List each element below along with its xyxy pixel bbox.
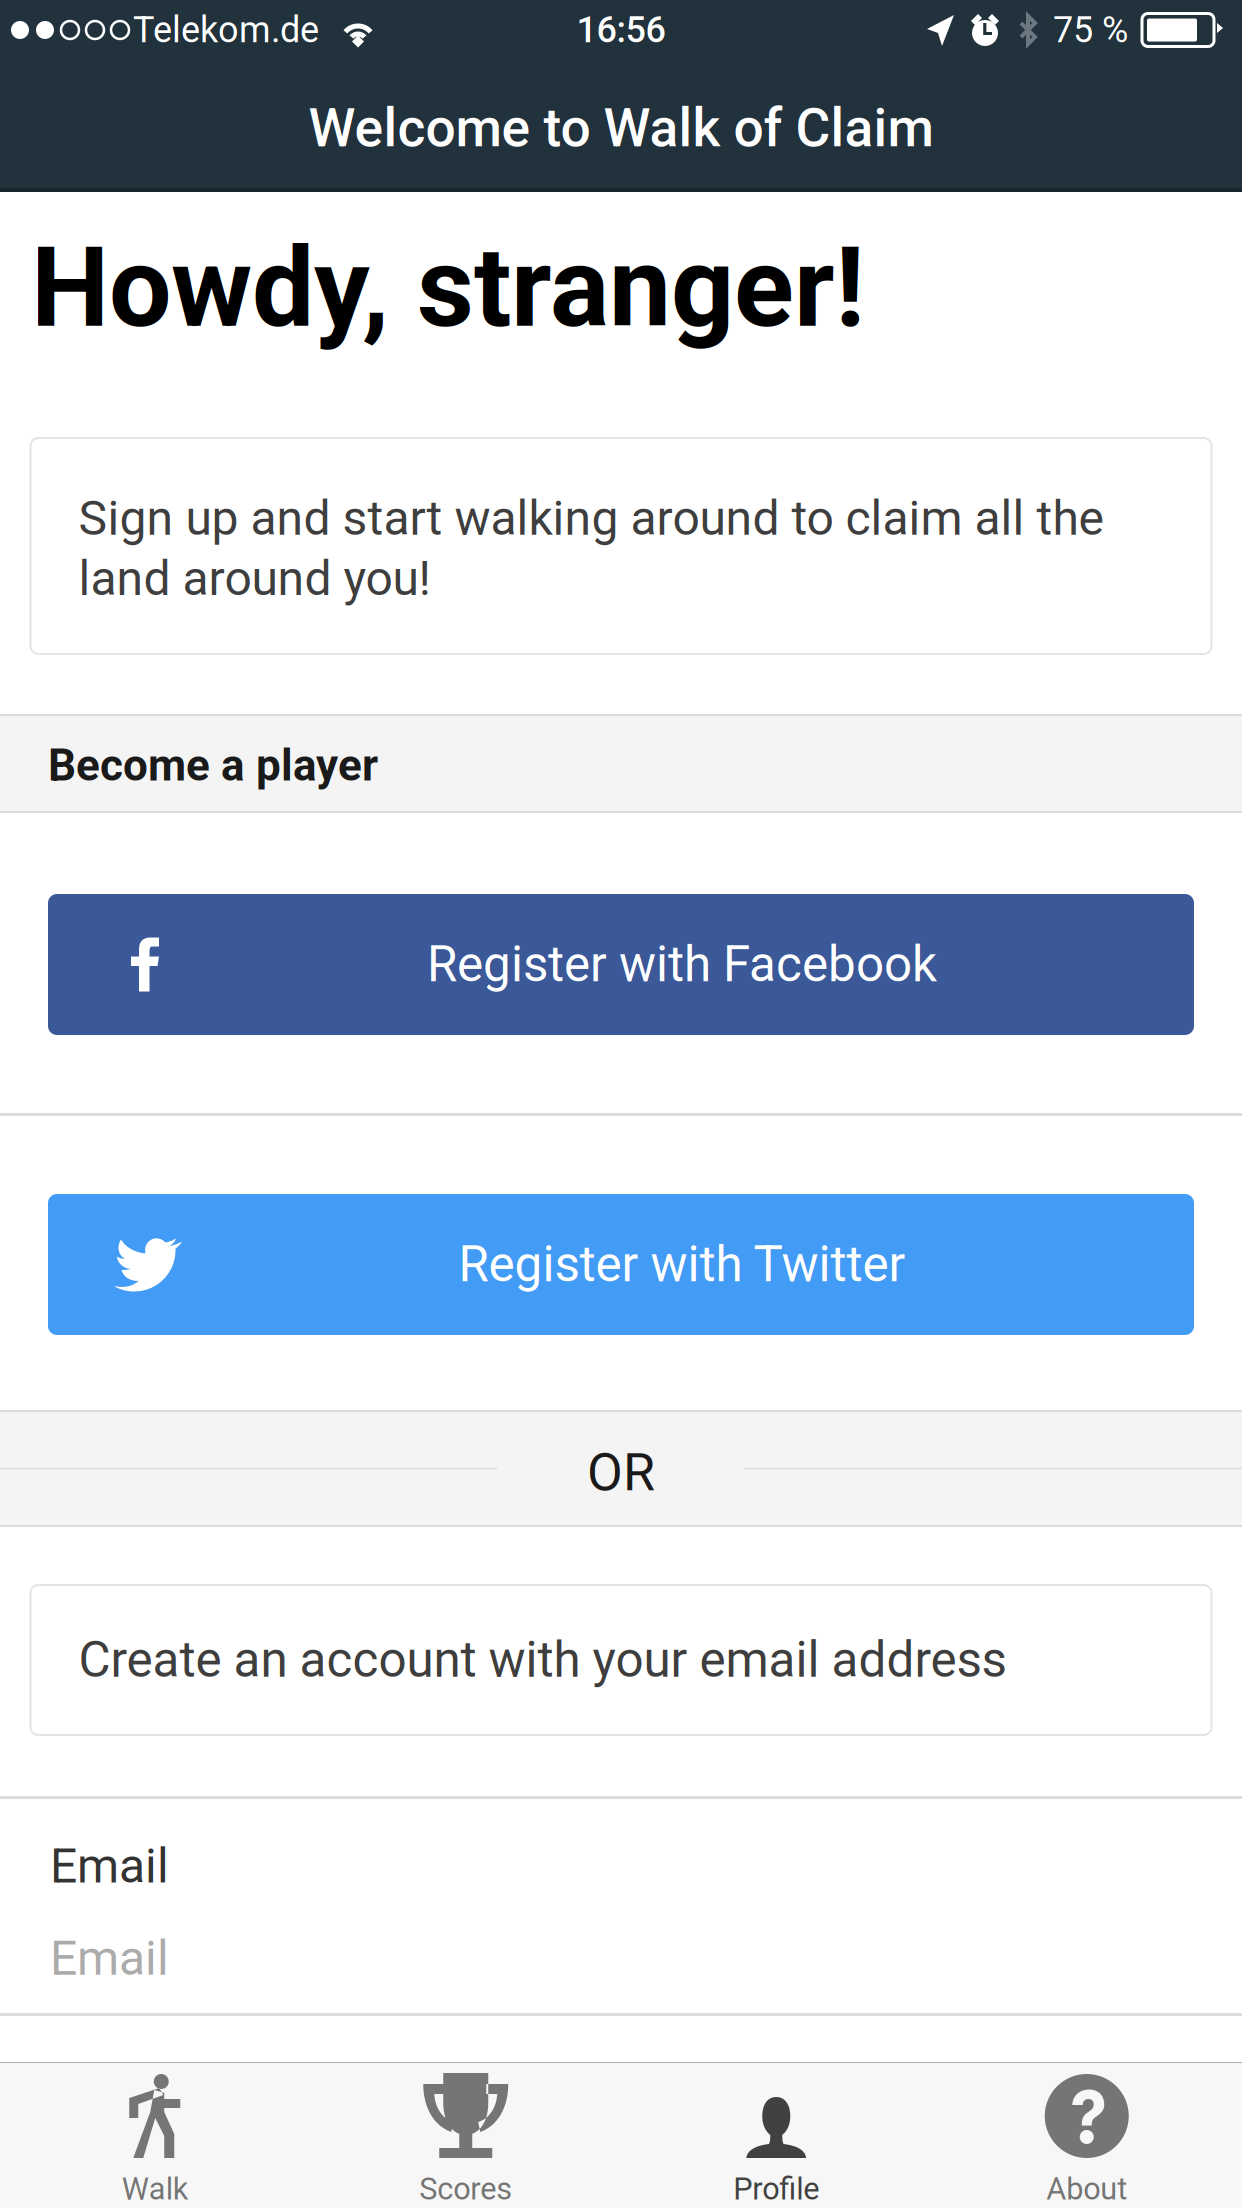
staticText: 16:56 — [576, 9, 665, 51]
staticText: Email — [50, 1838, 169, 1894]
button[interactable]: Create an account with your email addres… — [0, 1527, 1242, 1796]
button[interactable]: About — [931, 2063, 1242, 2208]
button[interactable]: Scores — [310, 2063, 621, 2208]
staticText: Howdy, stranger! — [31, 223, 865, 353]
staticText: Profile — [733, 2171, 819, 2207]
button[interactable]: Profile — [621, 2063, 931, 2208]
staticText: Register with Twitter — [458, 1236, 905, 1293]
staticText: Become a player — [48, 740, 378, 791]
staticText: About — [1046, 2171, 1127, 2207]
staticText: Welcome to Walk of Claim — [308, 97, 933, 159]
staticText: Register with Facebook — [427, 936, 937, 993]
button[interactable]: Walk — [0, 2063, 310, 2208]
staticText: OR — [587, 1442, 655, 1503]
button[interactable]: Register with Twitter — [0, 1116, 1242, 1410]
staticText: Email — [50, 1930, 169, 1986]
staticText: 75 % — [1053, 9, 1128, 51]
staticText: Telekom.de — [133, 9, 319, 51]
button[interactable]: Register with Facebook — [0, 813, 1242, 1113]
staticText: Scores — [419, 2171, 512, 2207]
staticText: Create an account with your email addres… — [78, 1631, 1006, 1689]
staticText: Walk — [122, 2171, 189, 2207]
staticText: Sign up and start walking around to clai… — [78, 490, 1103, 607]
